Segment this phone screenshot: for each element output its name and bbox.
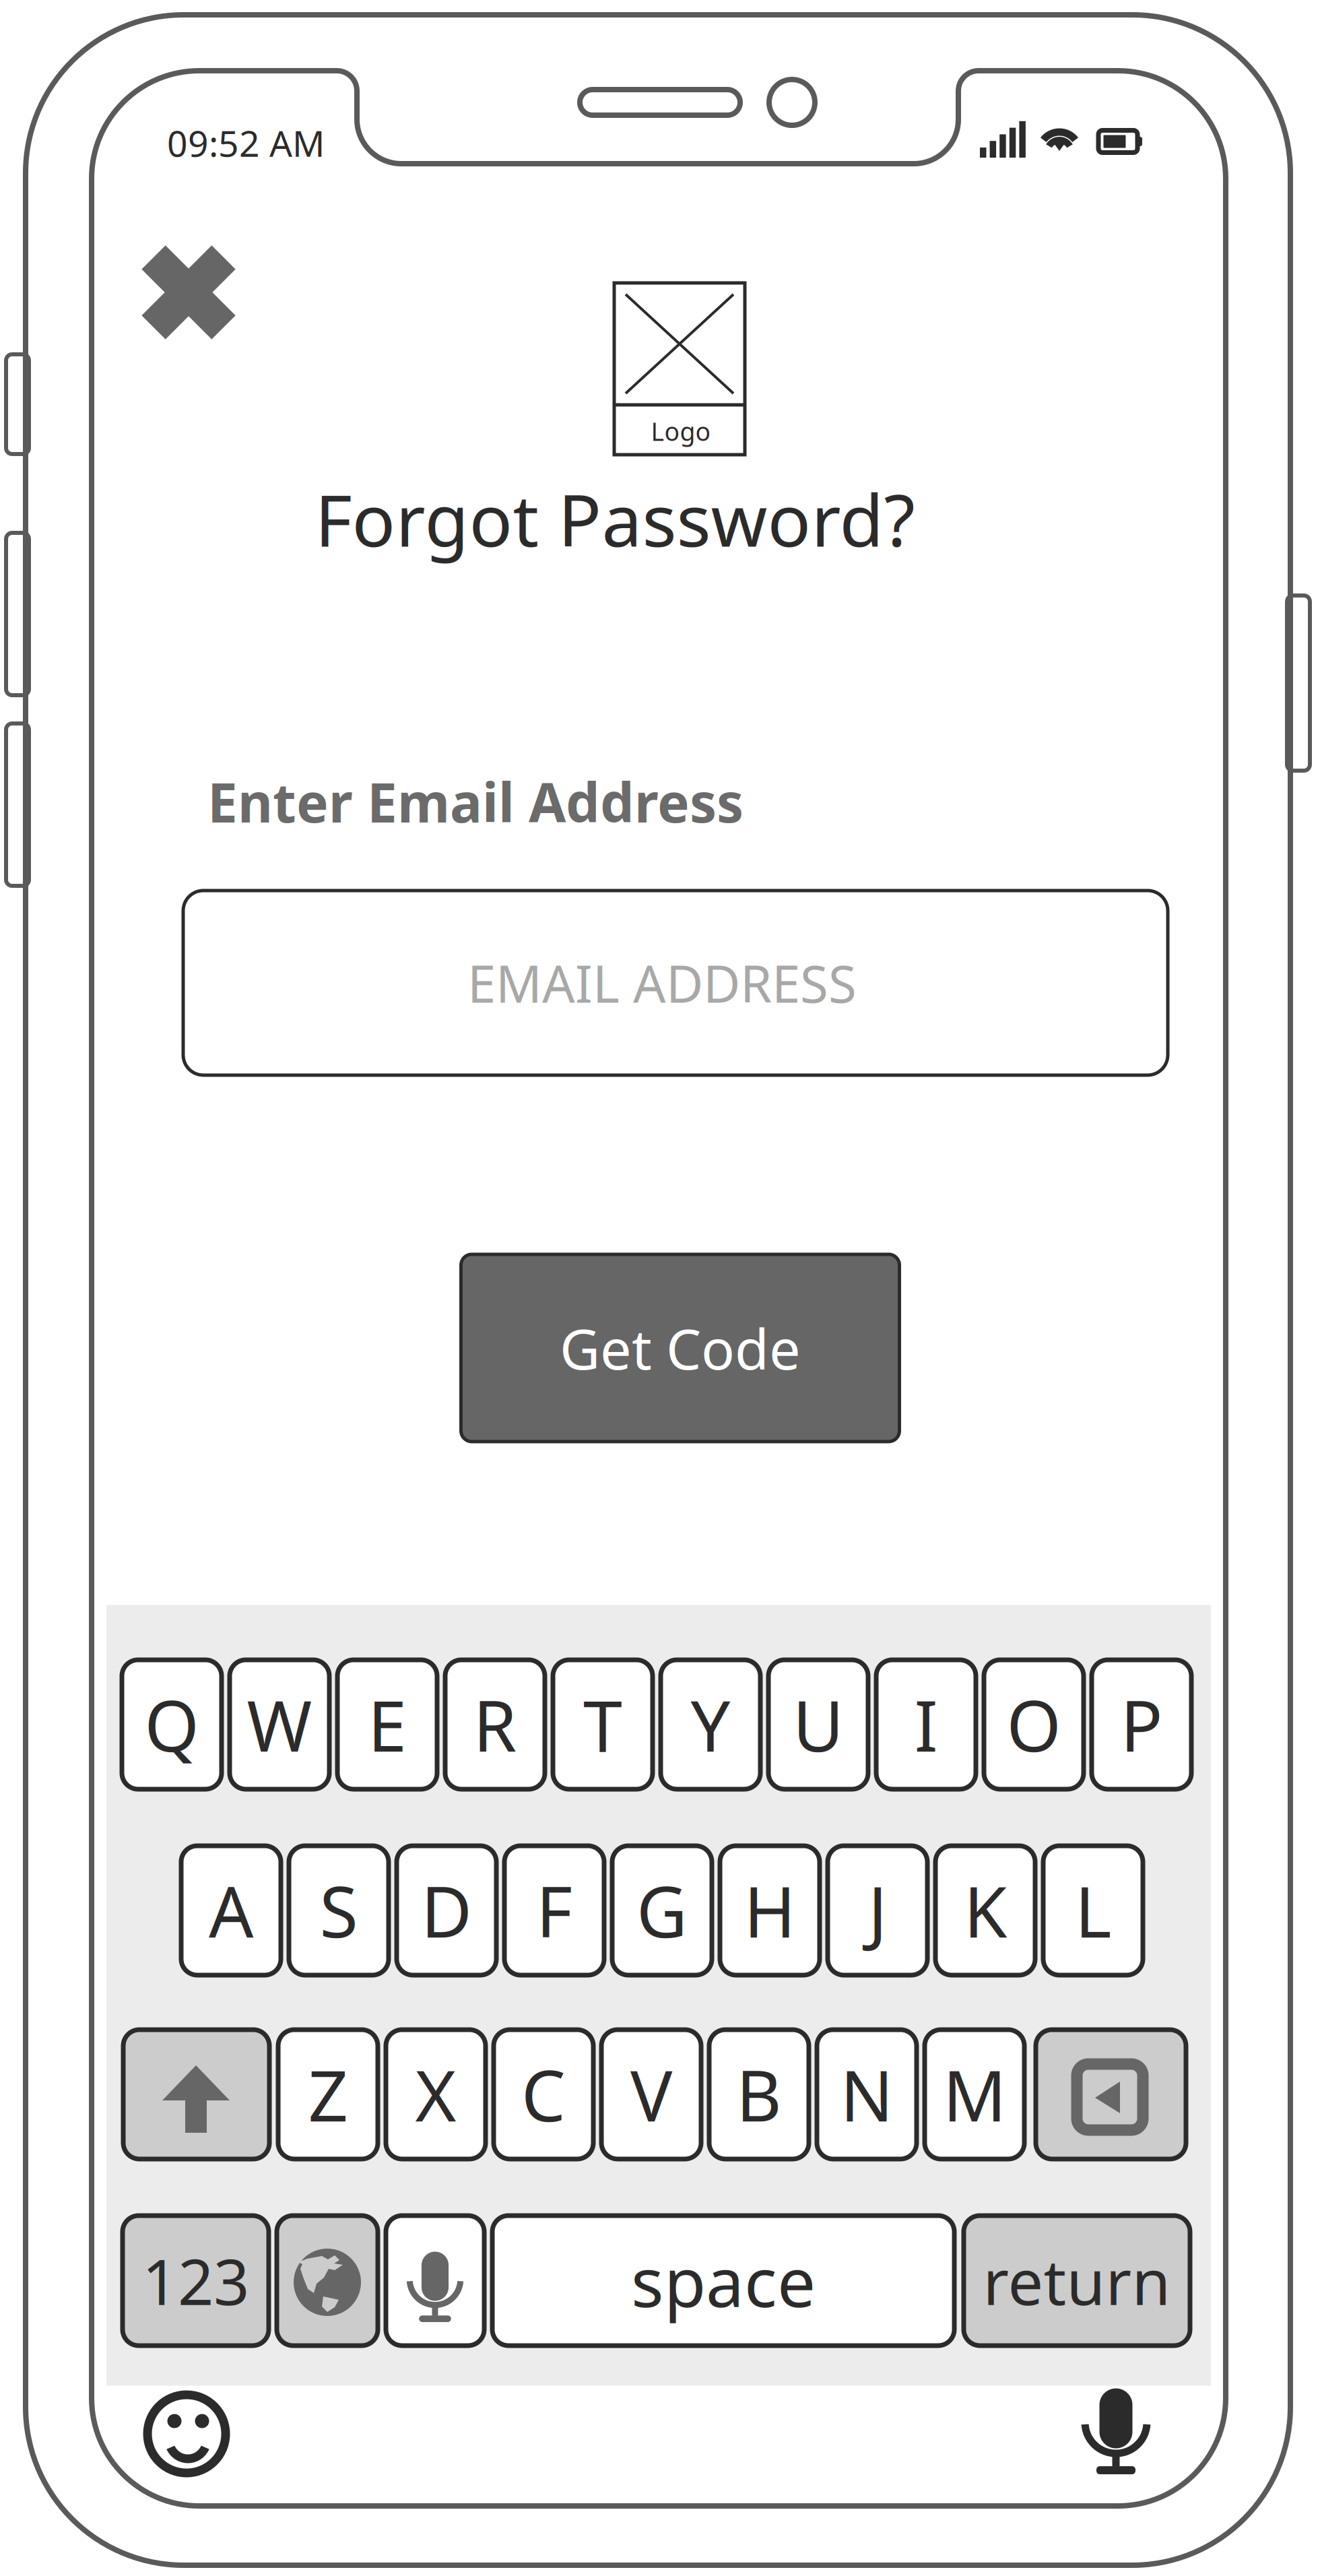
- button[interactable]: N: [817, 2030, 917, 2159]
- button[interactable]: Change keyboard: [277, 2216, 378, 2346]
- button[interactable]: B: [709, 2030, 809, 2159]
- button[interactable]: Delete: [1036, 2030, 1186, 2159]
- staticText: Enter Email Address: [207, 766, 744, 837]
- button[interactable]: Emoji keyboard: [139, 2387, 234, 2481]
- staticText: N: [840, 2048, 893, 2141]
- staticText: 123: [142, 2239, 249, 2322]
- button[interactable]: P: [1092, 1660, 1191, 1789]
- staticText: W: [247, 1678, 312, 1771]
- staticText: V: [630, 2048, 672, 2141]
- staticText: B: [736, 2048, 782, 2141]
- staticText: space: [631, 2235, 816, 2326]
- button[interactable]: L: [1043, 1846, 1143, 1975]
- staticText: O: [1006, 1678, 1061, 1771]
- button[interactable]: V: [601, 2030, 701, 2159]
- staticText: Q: [144, 1678, 199, 1771]
- button[interactable]: Z: [278, 2030, 378, 2159]
- staticText: S: [320, 1864, 358, 1957]
- staticText: D: [421, 1864, 472, 1957]
- staticText: EMAIL ADDRESS: [467, 949, 857, 1017]
- staticText: P: [1120, 1678, 1163, 1771]
- button[interactable]: U: [768, 1660, 868, 1789]
- button[interactable]: Shift: [123, 2030, 269, 2159]
- staticText: M: [943, 2048, 1006, 2141]
- button[interactable]: O: [984, 1660, 1084, 1789]
- staticText: Forgot Password?: [315, 471, 915, 566]
- staticText: Get Code: [560, 1311, 801, 1385]
- button[interactable]: Close: [131, 235, 246, 350]
- staticText: 09:52 AM: [167, 119, 325, 167]
- staticText: Y: [691, 1678, 730, 1771]
- button[interactable]: EMAIL ADDRESS: [183, 891, 1168, 1075]
- staticText: K: [964, 1864, 1007, 1957]
- button[interactable]: Dictate: [1076, 2381, 1156, 2509]
- button[interactable]: E: [337, 1660, 437, 1789]
- button[interactable]: C: [494, 2030, 593, 2159]
- staticText: E: [368, 1678, 407, 1771]
- staticText: J: [868, 1864, 887, 1957]
- button[interactable]: D: [397, 1846, 496, 1975]
- staticText: U: [793, 1678, 844, 1771]
- staticText: F: [536, 1864, 572, 1957]
- button[interactable]: Q: [122, 1660, 222, 1789]
- button[interactable]: X: [386, 2030, 486, 2159]
- staticText: I: [914, 1678, 938, 1771]
- staticText: Logo: [651, 414, 711, 448]
- staticText: A: [209, 1864, 253, 1957]
- button[interactable]: W: [230, 1660, 329, 1789]
- button[interactable]: Y: [661, 1660, 760, 1789]
- button[interactable]: A: [181, 1846, 281, 1975]
- staticText: return: [983, 2239, 1171, 2322]
- staticText: G: [636, 1864, 688, 1957]
- button[interactable]: return: [964, 2216, 1190, 2346]
- button[interactable]: 123: [123, 2216, 269, 2346]
- staticText: L: [1075, 1864, 1111, 1957]
- button[interactable]: Get Code: [461, 1254, 899, 1442]
- staticText: H: [744, 1864, 796, 1957]
- button[interactable]: Dictate: [386, 2216, 484, 2346]
- button[interactable]: T: [553, 1660, 653, 1789]
- staticText: Z: [308, 2048, 348, 2141]
- button[interactable]: H: [720, 1846, 820, 1975]
- staticText: T: [583, 1678, 622, 1771]
- button[interactable]: S: [289, 1846, 389, 1975]
- button[interactable]: I: [876, 1660, 976, 1789]
- button[interactable]: R: [445, 1660, 545, 1789]
- button[interactable]: J: [828, 1846, 927, 1975]
- button[interactable]: space: [492, 2216, 954, 2346]
- button[interactable]: K: [935, 1846, 1035, 1975]
- button[interactable]: G: [612, 1846, 712, 1975]
- button[interactable]: F: [504, 1846, 604, 1975]
- staticText: R: [473, 1678, 517, 1771]
- button[interactable]: M: [925, 2030, 1024, 2159]
- staticText: C: [521, 2048, 566, 2141]
- staticText: X: [415, 2048, 456, 2141]
